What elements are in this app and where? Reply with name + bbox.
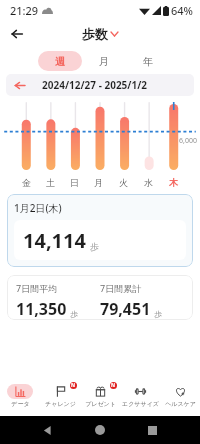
staticText: 21:29 — [10, 3, 39, 18]
button[interactable]: 年 — [126, 51, 170, 71]
button[interactable]: 7日間平均 — [7, 275, 193, 320]
button[interactable]: 1月2日(木) — [7, 194, 193, 267]
button[interactable]: 月 — [82, 51, 126, 71]
other: Back — [43, 426, 52, 435]
staticText: 週 — [55, 55, 65, 68]
staticText: 金 — [22, 177, 31, 188]
staticText: 7日間平均 — [16, 282, 100, 294]
staticText: N — [111, 382, 116, 389]
staticText: 79,451 — [100, 298, 151, 320]
staticText: 歩 — [70, 309, 78, 319]
staticText: 月 — [99, 55, 109, 68]
staticText: 1月2日(木) — [14, 201, 62, 215]
other: Home — [95, 425, 105, 435]
other: Previous week — [14, 80, 25, 91]
button[interactable]: N — [80, 376, 120, 416]
staticText: チャレンジ — [45, 400, 76, 408]
staticText: 14,114 — [23, 227, 86, 254]
button[interactable]: 歩数 — [82, 26, 118, 42]
staticText: 土 — [46, 177, 55, 188]
staticText: 歩 — [154, 309, 162, 319]
button[interactable]: エクササイズ — [120, 376, 160, 416]
staticText: 歩 — [90, 241, 99, 252]
staticText: 木 — [169, 177, 178, 188]
staticText: 6,000 — [179, 136, 197, 146]
staticText: データ — [11, 400, 30, 408]
staticText: 7日間累計 — [100, 282, 184, 294]
staticText: N — [71, 382, 76, 389]
staticText: 月 — [94, 177, 103, 188]
staticText: ヘルスケア — [165, 400, 196, 408]
staticText: プレゼント — [85, 400, 116, 408]
button[interactable]: N — [40, 376, 80, 416]
staticText: 日 — [70, 177, 79, 188]
button[interactable]: データ — [0, 376, 40, 416]
button[interactable]: 週 — [38, 51, 82, 71]
staticText: 2024/12/27 - 2025/1/2 — [42, 78, 148, 92]
button[interactable]: ヘルスケア — [160, 376, 200, 416]
button[interactable]: Previous week — [6, 74, 194, 96]
staticText: 64% — [171, 3, 193, 18]
staticText: 火 — [119, 177, 128, 188]
staticText: エクササイズ — [122, 400, 159, 408]
staticText: 年 — [143, 55, 153, 68]
button[interactable]: Back — [4, 21, 30, 47]
staticText: 歩数 — [82, 26, 108, 42]
staticText: 水 — [144, 177, 153, 188]
staticText: 11,350 — [16, 298, 67, 320]
